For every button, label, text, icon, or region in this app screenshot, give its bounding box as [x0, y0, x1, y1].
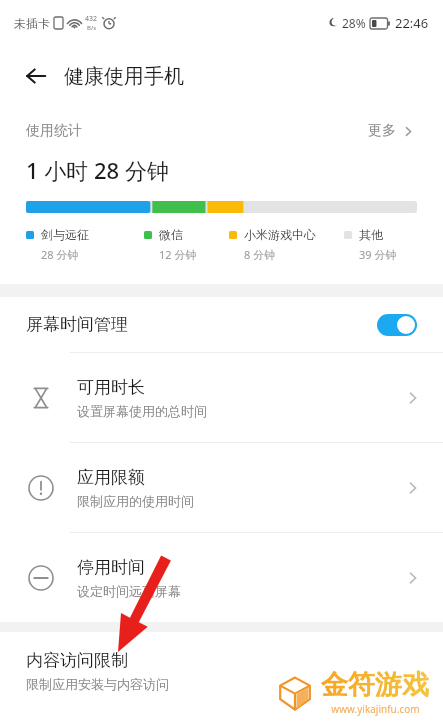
staticText: www.yikajinfu.com	[331, 702, 420, 716]
button[interactable]: 停用时间	[0, 533, 443, 622]
staticText: 未插卡	[14, 16, 50, 31]
staticText: 金符游戏	[321, 668, 429, 702]
button[interactable]: 可用时长	[0, 353, 443, 442]
staticText: 更多	[368, 122, 396, 140]
staticText: 屏幕时间管理	[26, 314, 128, 335]
staticText: 12 分钟	[159, 247, 197, 262]
staticText: 设定时间远离屏幕	[77, 583, 181, 599]
staticText: 微信	[159, 227, 183, 242]
staticText: 健康使用手机	[64, 64, 184, 89]
button[interactable]: 更多	[366, 116, 417, 146]
button[interactable]: Back	[14, 54, 58, 98]
staticText: 应用限额	[77, 467, 145, 488]
staticText: 停用时间	[77, 557, 145, 578]
staticText: 使用统计	[26, 122, 82, 140]
staticText: 28%	[342, 15, 366, 31]
staticText: 限制应用安装与内容访问	[26, 676, 169, 692]
staticText: 可用时长	[77, 377, 145, 398]
staticText: 剑与远征	[41, 227, 89, 242]
staticText: 432	[85, 14, 98, 24]
staticText: 内容访问限制	[26, 650, 128, 671]
staticText: B/s	[87, 24, 97, 32]
staticText: 限制应用的使用时间	[77, 493, 194, 509]
staticText: 39 分钟	[359, 247, 397, 262]
button[interactable]: 屏幕时间管理开关	[377, 314, 417, 336]
staticText: 28 分钟	[41, 247, 79, 262]
button[interactable]: 屏幕时间管理	[0, 297, 443, 352]
staticText: 小米游戏中心	[244, 227, 316, 242]
staticText: 其他	[359, 227, 383, 242]
staticText: 1 小时 28 分钟	[26, 155, 169, 185]
staticText: 22:46	[395, 14, 429, 32]
button[interactable]: 应用限额	[0, 443, 443, 532]
button[interactable]: 内容访问限制	[0, 632, 443, 710]
staticText: 设置屏幕使用的总时间	[77, 403, 207, 419]
staticText: 8 分钟	[244, 247, 276, 262]
